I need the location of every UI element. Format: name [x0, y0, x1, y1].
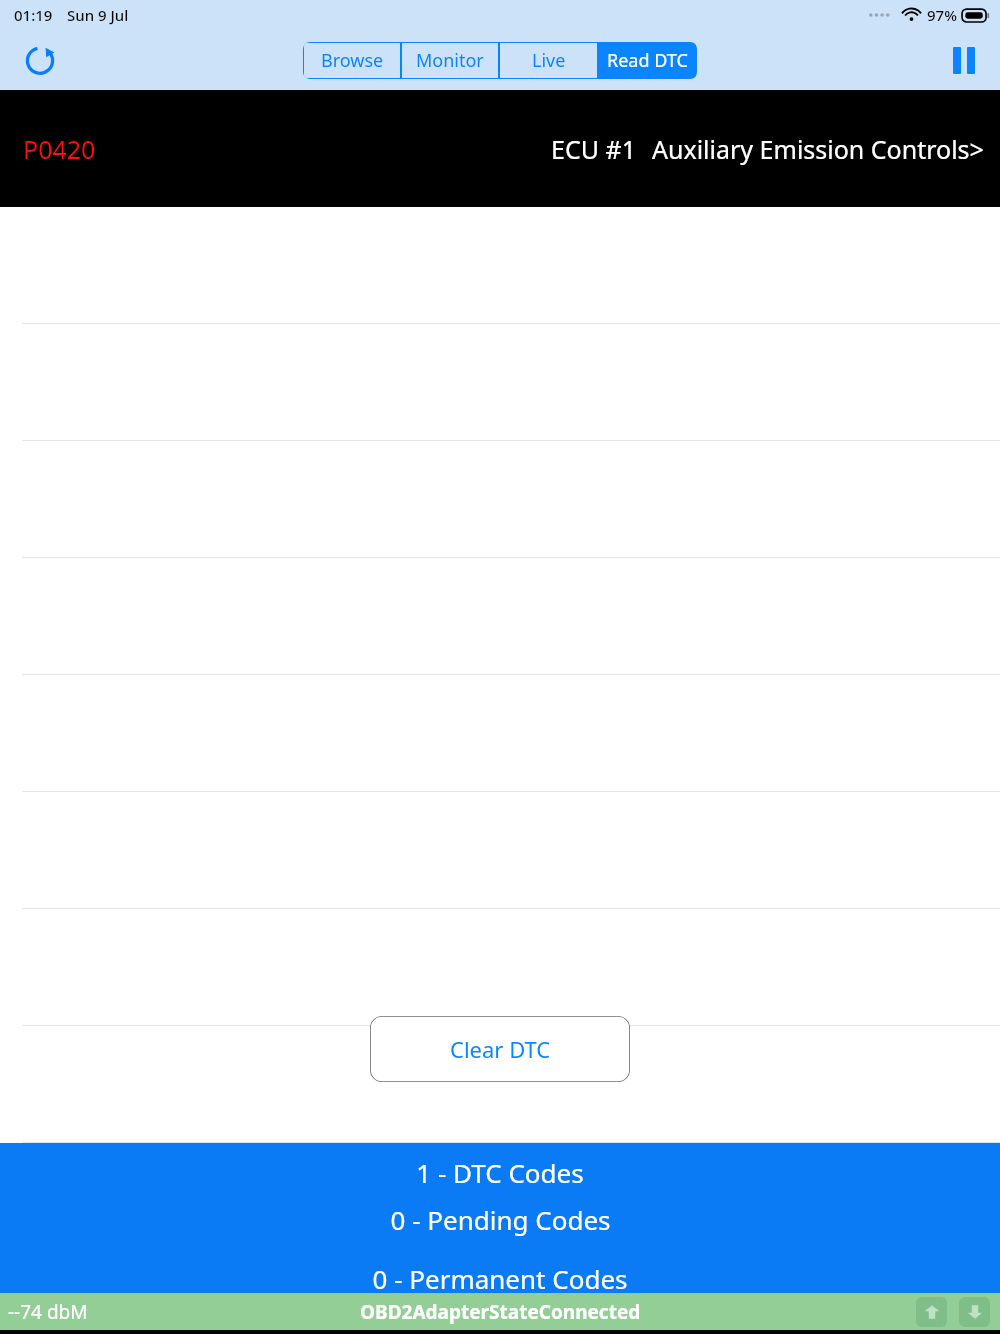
button[interactable]: Monitor	[402, 43, 498, 78]
staticText: 01:19	[14, 5, 53, 25]
button[interactable]: 1 - DTC Codes	[0, 1143, 1000, 1293]
staticText: OBD2AdapterStateConnected	[360, 1299, 641, 1325]
button[interactable]: Read DTC	[599, 43, 696, 78]
staticText: 0 - Permanent Codes	[372, 1261, 628, 1293]
staticText: Sun 9 Jul	[67, 5, 129, 25]
button[interactable]: Scroll down	[959, 1297, 990, 1327]
staticText: --74 dbM	[8, 1299, 88, 1325]
button[interactable]: P0420	[0, 90, 1000, 207]
staticText: P0420	[23, 132, 96, 166]
staticText: Browse	[321, 48, 384, 73]
staticText: Clear DTC	[450, 1034, 551, 1064]
staticText: ECU #1	[551, 132, 636, 166]
button[interactable]: Browse	[304, 43, 400, 78]
staticText: 0 - Pending Codes	[390, 1202, 611, 1237]
staticText: Auxiliary Emission Controls>	[652, 132, 984, 166]
button[interactable]: Clear DTC	[370, 1016, 630, 1082]
staticText: Live	[532, 48, 566, 73]
staticText: 97%	[927, 5, 957, 25]
staticText: Read DTC	[607, 48, 688, 73]
button[interactable]: Scroll up	[916, 1297, 947, 1327]
button[interactable]: Pause	[940, 36, 988, 84]
button[interactable]: Refresh	[16, 36, 64, 84]
button[interactable]	[0, 1026, 1000, 1143]
staticText: 1 - DTC Codes	[416, 1155, 584, 1190]
staticText: Monitor	[416, 48, 484, 73]
button[interactable]	[0, 909, 1000, 1026]
button[interactable]: Live	[500, 43, 597, 78]
